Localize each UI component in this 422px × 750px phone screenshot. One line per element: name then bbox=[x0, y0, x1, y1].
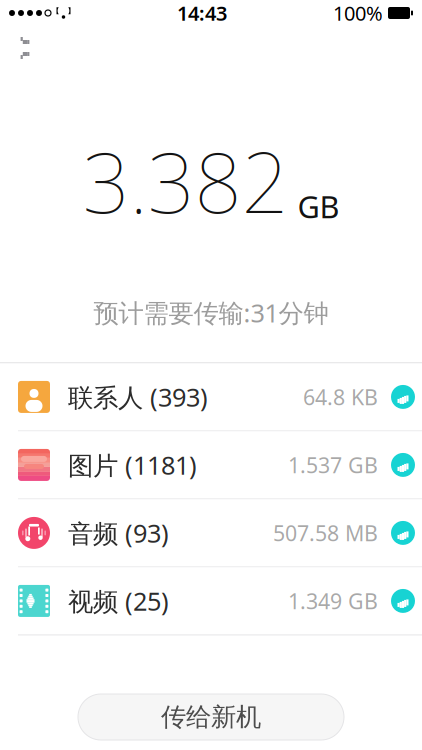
staticText: 1.349 GB bbox=[288, 587, 378, 615]
button[interactable]: 音频 (93) bbox=[0, 499, 422, 567]
staticText: 音频 (93) bbox=[68, 516, 169, 550]
staticText: 1.537 GB bbox=[288, 451, 378, 479]
button[interactable]: 联系人 (393) bbox=[0, 363, 422, 431]
staticText: 图片 (1181) bbox=[68, 448, 197, 482]
button[interactable]: 传给新机 bbox=[78, 694, 344, 740]
staticText: 507.58 MB bbox=[273, 519, 378, 547]
button[interactable]: 视频 (25) bbox=[0, 567, 422, 635]
staticText: GB bbox=[297, 186, 339, 227]
staticText: 14:43 bbox=[177, 0, 227, 26]
staticText: 100% bbox=[333, 0, 383, 26]
button[interactable]: Back bbox=[0, 28, 46, 68]
staticText: 视频 (25) bbox=[68, 584, 169, 618]
staticText: 3.382 bbox=[82, 126, 288, 236]
button[interactable]: 图片 (1181) bbox=[0, 431, 422, 499]
staticText: 预计需要传输:31分钟 bbox=[93, 296, 328, 329]
staticText: 传给新机 bbox=[161, 701, 261, 732]
staticText: 联系人 (393) bbox=[68, 380, 208, 414]
staticText: 64.8 KB bbox=[303, 383, 378, 411]
